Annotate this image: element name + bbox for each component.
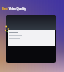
button[interactable]: Video preview — [6, 15, 56, 63]
button[interactable]: Best — [2, 7, 27, 11]
staticText: Best — [2, 7, 8, 11]
staticText: Video Quality — [8, 7, 27, 11]
